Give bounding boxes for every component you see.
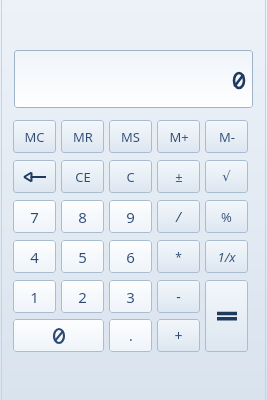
staticText: . bbox=[129, 326, 133, 345]
button[interactable]: - bbox=[157, 280, 200, 313]
button[interactable]: MR bbox=[61, 120, 104, 153]
button[interactable]: ± bbox=[157, 160, 200, 193]
staticText: M+ bbox=[169, 128, 189, 146]
button[interactable]: √ bbox=[205, 160, 248, 193]
staticText: 1/x bbox=[217, 248, 236, 266]
staticText: MS bbox=[121, 128, 140, 146]
button[interactable]: CE bbox=[61, 160, 104, 193]
button[interactable]: 1 bbox=[13, 280, 56, 313]
staticText: % bbox=[221, 208, 232, 226]
staticText: 5 bbox=[78, 247, 87, 267]
button[interactable]: MS bbox=[109, 120, 152, 153]
button[interactable]: 9 bbox=[109, 200, 152, 233]
button[interactable]: Equals bbox=[205, 280, 248, 352]
staticText: 9 bbox=[126, 207, 135, 227]
button[interactable]: 1/x bbox=[205, 240, 248, 273]
button[interactable]: Backspace bbox=[13, 160, 56, 193]
button[interactable]: MC bbox=[13, 120, 56, 153]
button[interactable]: 8 bbox=[61, 200, 104, 233]
staticText: 6 bbox=[126, 247, 135, 267]
button[interactable]: * bbox=[157, 240, 200, 273]
button[interactable]: 6 bbox=[109, 240, 152, 273]
button[interactable]: 4 bbox=[13, 240, 56, 273]
staticText: √ bbox=[222, 169, 231, 184]
button[interactable]: Zero bbox=[13, 319, 104, 352]
staticText: * bbox=[175, 249, 182, 265]
button[interactable]: . bbox=[109, 319, 152, 352]
staticText: C bbox=[126, 168, 135, 186]
button[interactable]: 7 bbox=[13, 200, 56, 233]
button[interactable]: / bbox=[157, 200, 200, 233]
staticText: 7 bbox=[30, 207, 39, 227]
staticText: / bbox=[176, 207, 181, 226]
staticText: 1 bbox=[30, 287, 39, 307]
staticText: + bbox=[174, 326, 183, 345]
button[interactable]: % bbox=[205, 200, 248, 233]
button[interactable]: 2 bbox=[61, 280, 104, 313]
staticText: 4 bbox=[30, 247, 39, 267]
staticText: - bbox=[176, 287, 181, 306]
staticText: 8 bbox=[78, 207, 87, 227]
button[interactable]: 3 bbox=[109, 280, 152, 313]
staticText: MR bbox=[73, 128, 93, 146]
staticText: 3 bbox=[126, 287, 135, 307]
button[interactable]: + bbox=[157, 319, 200, 352]
staticText: ± bbox=[175, 168, 183, 186]
button[interactable]: M- bbox=[205, 120, 248, 153]
staticText: MC bbox=[24, 128, 45, 146]
button[interactable]: 5 bbox=[61, 240, 104, 273]
button[interactable]: C bbox=[109, 160, 152, 193]
staticText: CE bbox=[75, 168, 91, 186]
button[interactable]: M+ bbox=[157, 120, 200, 153]
staticText: 2 bbox=[78, 287, 87, 307]
staticText: M- bbox=[219, 128, 235, 146]
